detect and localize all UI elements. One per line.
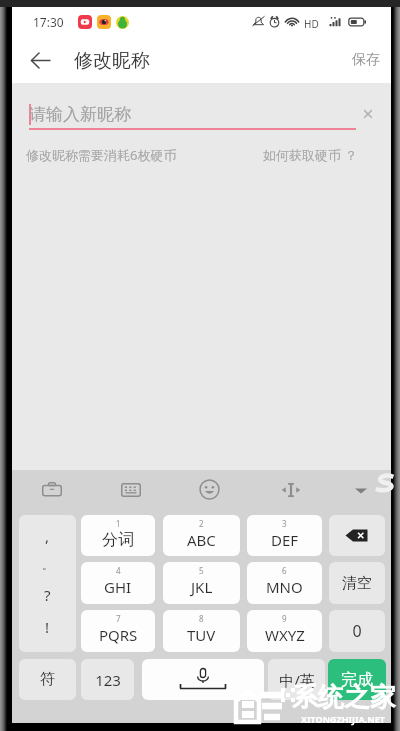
button[interactable]: Keyboard settings — [115, 474, 147, 506]
staticText: ABC — [187, 530, 216, 550]
button[interactable]: Move cursor — [275, 474, 307, 506]
button[interactable]: Backspace — [329, 515, 385, 556]
staticText: 4 — [116, 565, 121, 576]
staticText: 5 — [199, 565, 204, 576]
button[interactable]: 3 — [247, 515, 322, 556]
button[interactable]: 6 — [247, 562, 322, 604]
staticText: 6 — [282, 565, 287, 576]
staticText: 修改昵称 — [74, 49, 150, 73]
button[interactable]: 4 — [81, 562, 155, 604]
staticText: 如何获取硬币 ？ — [263, 146, 358, 164]
staticText: 请输入新昵称 — [29, 104, 131, 125]
staticText: MNO — [266, 577, 303, 597]
staticText: 完成 — [341, 670, 373, 690]
staticText: , — [45, 526, 50, 546]
staticText: 0 — [352, 620, 362, 642]
staticText: 3 — [282, 518, 287, 529]
staticText: TUV — [187, 625, 216, 645]
staticText: JKL — [191, 577, 213, 597]
button[interactable]: Collapse — [345, 474, 377, 506]
staticText: 。 — [42, 558, 53, 572]
button[interactable]: 8 — [163, 610, 240, 652]
staticText: 保存 — [352, 51, 380, 69]
button[interactable]: Clipboard — [36, 474, 68, 506]
staticText: 符 — [40, 670, 55, 689]
staticText: GHI — [104, 577, 132, 597]
button[interactable]: 如何获取硬币 ？ — [257, 140, 364, 170]
button[interactable]: 中/英 — [268, 659, 325, 700]
button[interactable]: 0 — [329, 610, 385, 652]
button[interactable]: 5 — [163, 562, 240, 604]
staticText: WXYZ — [265, 625, 305, 645]
staticText: 17:30 — [33, 14, 64, 30]
staticText: ! — [45, 617, 50, 637]
staticText: 修改昵称需要消耗6枚硬币 — [26, 146, 177, 164]
staticText: 123 — [95, 670, 121, 690]
staticText: 9 — [282, 613, 287, 624]
button[interactable]: 7 — [81, 610, 155, 652]
button[interactable]: Space — [142, 659, 264, 700]
staticText: 分词 — [102, 530, 134, 550]
staticText: 系统之家 — [292, 681, 396, 714]
staticText: 2 — [199, 518, 204, 529]
staticText: 8 — [199, 613, 204, 624]
staticText: XITONGZHIJIA.NET — [301, 713, 385, 725]
button[interactable]: 2 — [163, 515, 240, 556]
staticText: ? — [44, 585, 51, 605]
button[interactable]: Clear — [355, 101, 381, 127]
button[interactable]: 清空 — [329, 562, 385, 604]
button[interactable]: punctuation — [19, 515, 76, 652]
button[interactable]: Back — [21, 40, 61, 80]
staticText: PQRS — [99, 625, 138, 645]
staticText: HD — [304, 17, 319, 31]
staticText: DEF — [271, 530, 299, 550]
button[interactable]: 1 — [81, 515, 155, 556]
button[interactable]: 123 — [81, 659, 134, 700]
staticText: 7 — [116, 613, 121, 624]
button[interactable]: 9 — [247, 610, 322, 652]
staticText: 1 — [116, 518, 121, 529]
button[interactable]: 完成 — [328, 659, 386, 700]
button[interactable]: Emoji — [193, 473, 225, 505]
staticText: 中/英 — [279, 670, 315, 690]
button[interactable]: 符 — [19, 659, 76, 700]
staticText: 清空 — [342, 574, 372, 593]
button[interactable]: 保存 — [341, 41, 391, 79]
